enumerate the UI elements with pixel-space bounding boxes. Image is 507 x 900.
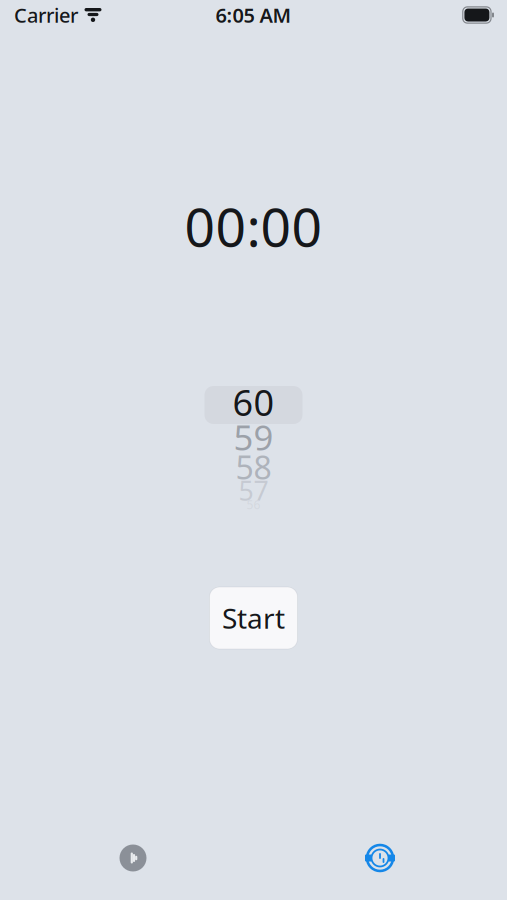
button[interactable]: Reset timer [360, 838, 400, 878]
staticText: 59 [233, 414, 273, 460]
staticText: 56 [246, 496, 260, 512]
staticText: 58 [235, 446, 271, 488]
button[interactable]: Seconds picker, 60 selected [204, 386, 302, 514]
staticText: 57 [238, 473, 268, 508]
staticText: 00:00 [184, 191, 322, 261]
button[interactable]: Start [209, 587, 297, 649]
staticText: 60 [232, 378, 274, 426]
staticText: Start [222, 599, 285, 637]
button[interactable]: Play [113, 838, 153, 878]
staticText: Carrier [14, 2, 78, 28]
staticText: 6:05 AM [215, 2, 291, 28]
